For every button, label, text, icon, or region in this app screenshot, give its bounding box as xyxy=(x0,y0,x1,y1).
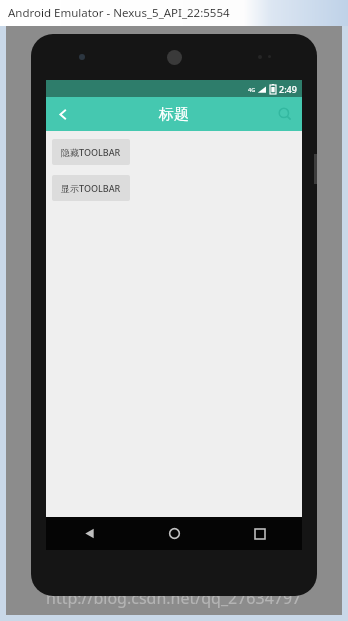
button[interactable]: 隐藏TOOLBAR xyxy=(52,139,130,165)
button[interactable]: Search xyxy=(268,97,302,131)
staticText: 标题 xyxy=(159,105,189,124)
staticText: Android Emulator - Nexus_5_API_22:5554 xyxy=(8,5,230,21)
button[interactable]: Back xyxy=(46,517,132,550)
staticText: 2:49 xyxy=(279,83,297,95)
button[interactable]: 显示TOOLBAR xyxy=(52,175,130,201)
button[interactable]: Home xyxy=(132,517,217,550)
button[interactable]: Back xyxy=(46,97,80,131)
staticText: 4G xyxy=(248,86,256,93)
staticText: 显示TOOLBAR xyxy=(61,182,121,194)
staticText: http://blog.csdn.net/qq_27634797 xyxy=(46,587,302,609)
staticText: 隐藏TOOLBAR xyxy=(61,146,121,158)
button[interactable]: Recent apps xyxy=(217,517,302,550)
